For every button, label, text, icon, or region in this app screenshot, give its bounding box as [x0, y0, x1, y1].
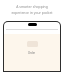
staticText: experience in your pocket	[11, 10, 53, 15]
staticText: A smarter shopping	[16, 4, 48, 9]
staticText: Order	[28, 51, 36, 55]
